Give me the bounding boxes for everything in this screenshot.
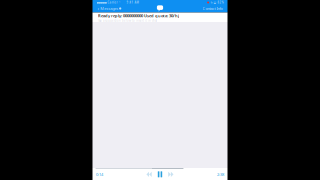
staticText: Ready reply: 0000000000 Used quota: 30/h…: [98, 13, 179, 18]
button[interactable]: Back to Messages: [96, 5, 123, 12]
button[interactable]: Next track: [167, 170, 175, 178]
button[interactable]: Contact Info: [201, 5, 224, 12]
staticText: ●●●●● Carrier ⌃: [96, 1, 120, 4]
button[interactable]: Pause: [156, 170, 164, 179]
button[interactable]: Previous track: [145, 170, 153, 178]
staticText: Tap a suggestion below to insert it in c…: [98, 19, 157, 22]
staticText: Messages: [100, 6, 118, 11]
staticText: ‹: [97, 5, 99, 12]
staticText: 9:41 AM: [126, 1, 138, 4]
staticText: Contact Info: [202, 6, 222, 11]
staticText: 2:38: [217, 172, 224, 177]
staticText: 0:14: [96, 172, 103, 177]
staticText: ↻ ⬓ 82%: [210, 1, 223, 4]
